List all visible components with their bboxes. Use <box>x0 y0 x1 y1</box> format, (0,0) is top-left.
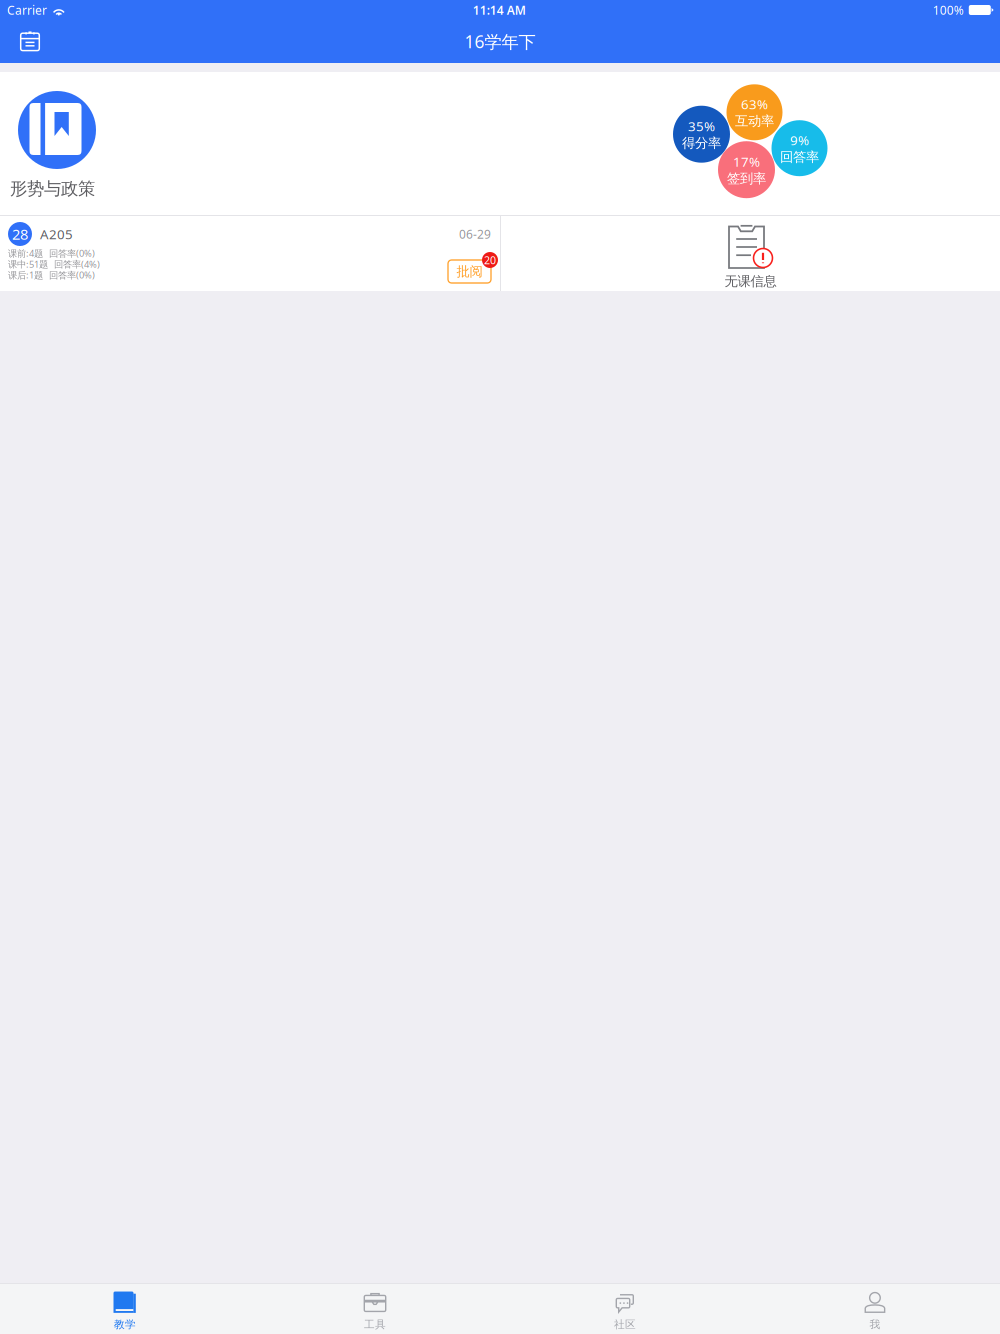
button[interactable]: 无课信息 <box>501 216 1000 291</box>
staticText: 16学年下 <box>464 30 535 53</box>
button[interactable]: 工具 <box>250 1284 500 1334</box>
button[interactable]: 教学 <box>0 1284 250 1334</box>
staticText: 课前:4题 回答率(0%) <box>8 247 95 259</box>
staticText: 教学 <box>114 1318 136 1331</box>
staticText: 批阅 <box>456 263 482 280</box>
staticText: 课中:51题 回答率(4%) <box>8 258 100 270</box>
staticText: 35% <box>688 117 715 135</box>
staticText: 互动率 <box>735 113 774 129</box>
staticText: Carrier <box>7 2 47 18</box>
button[interactable]: 社区 <box>500 1284 750 1334</box>
staticText: 9% <box>790 131 809 149</box>
staticText: 20 <box>484 253 496 267</box>
staticText: 得分率 <box>682 135 721 151</box>
staticText: 签到率 <box>727 170 766 187</box>
staticText: 100% <box>933 2 964 18</box>
staticText: 06-29 <box>459 226 491 242</box>
button[interactable]: 28 <box>0 216 500 291</box>
staticText: 11:14 AM <box>473 2 526 18</box>
staticText: 工具 <box>364 1318 386 1331</box>
staticText: 社区 <box>614 1318 636 1331</box>
staticText: A205 <box>40 225 73 243</box>
staticText: 无课信息 <box>724 273 776 289</box>
staticText: 17% <box>733 153 760 170</box>
button[interactable]: Courses <box>9 20 51 63</box>
staticText: 回答率 <box>780 149 819 165</box>
staticText: 63% <box>741 95 768 113</box>
button[interactable]: 我 <box>750 1284 1000 1334</box>
staticText: 形势与政策 <box>10 178 95 199</box>
staticText: 28 <box>12 224 28 244</box>
staticText: 我 <box>869 1318 880 1331</box>
button[interactable]: 批阅 <box>448 247 498 283</box>
staticText: 课后:1题 回答率(0%) <box>8 269 95 281</box>
